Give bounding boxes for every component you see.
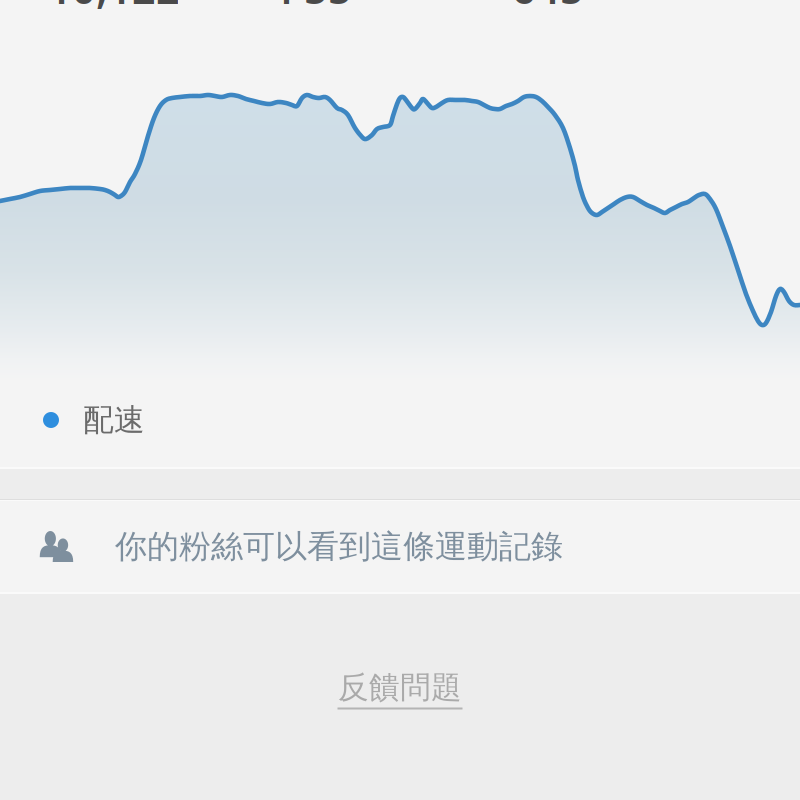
staticText: 配速 — [83, 401, 145, 439]
staticText: 你的粉絲可以看到這條運動記錄 — [115, 527, 563, 566]
staticText: 4'55 — [270, 0, 352, 15]
staticText: 645 — [512, 0, 584, 15]
button[interactable]: 你的粉絲可以看到這條運動記錄 — [0, 501, 800, 592]
staticText: 10,122 — [48, 0, 180, 15]
button[interactable]: 反饋問題 — [280, 666, 520, 714]
staticText: 反饋問題 — [338, 669, 462, 706]
